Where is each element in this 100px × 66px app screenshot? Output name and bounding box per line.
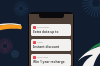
button[interactable]: Offers: [31, 39, 71, 51]
staticText: Data benefit: [37, 26, 50, 29]
staticText: Offers: [37, 41, 44, 44]
staticText: Lucky draw: [37, 56, 49, 59]
staticText: Instant discount: [33, 45, 60, 49]
staticText: Extra data up to 500GB: [33, 30, 69, 34]
button[interactable]: Lucky draw: [31, 54, 71, 66]
staticText: Win 1 year recharge: [33, 60, 65, 64]
button[interactable]: Data benefit: [31, 24, 71, 36]
